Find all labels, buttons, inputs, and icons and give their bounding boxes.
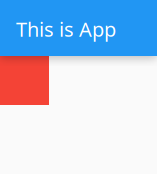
staticText: This is App: [16, 16, 116, 42]
button[interactable]: Red tile: [0, 56, 49, 105]
